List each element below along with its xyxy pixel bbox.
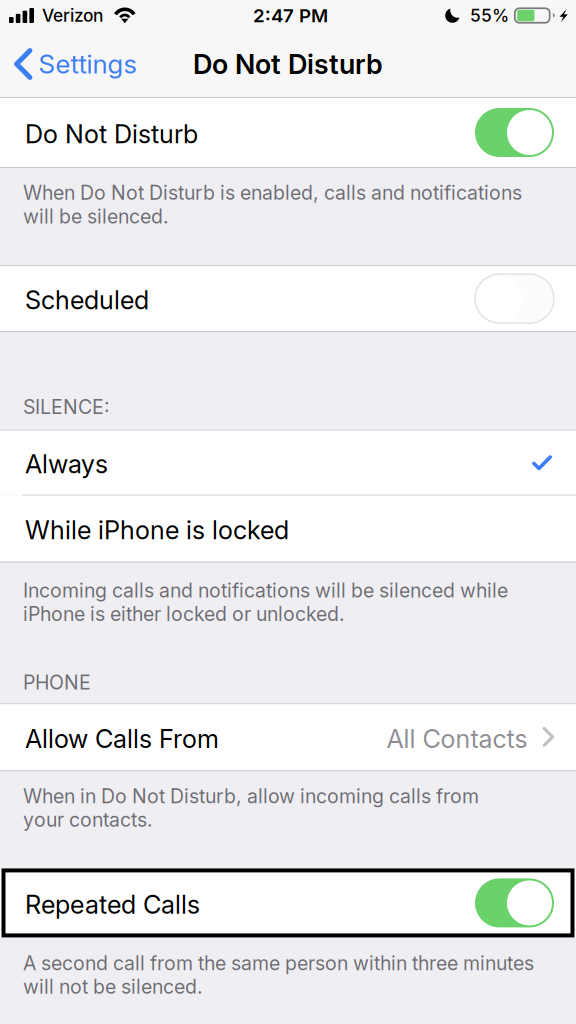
staticText: Allow Calls From bbox=[25, 723, 219, 754]
button[interactable]: Repeated Calls bbox=[0, 868, 576, 937]
button[interactable]: Allow Calls From bbox=[0, 704, 576, 770]
staticText: PHONE bbox=[23, 671, 91, 694]
staticText: Settings bbox=[38, 48, 136, 80]
staticText: 2:47 PM bbox=[253, 4, 328, 27]
staticText: Do Not Disturb bbox=[25, 119, 198, 149]
staticText: Scheduled bbox=[25, 285, 149, 315]
button[interactable]: Do Not Disturb bbox=[0, 98, 576, 167]
staticText: Incoming calls and notifications will be… bbox=[23, 579, 508, 626]
button[interactable]: Settings bbox=[0, 31, 148, 97]
staticText: SILENCE: bbox=[23, 395, 110, 419]
staticText: 55% bbox=[470, 5, 509, 26]
button[interactable]: Always bbox=[0, 431, 576, 495]
staticText: A second call from the same person withi… bbox=[23, 951, 534, 998]
staticText: When in Do Not Disturb, allow incoming c… bbox=[23, 784, 479, 831]
staticText: Do Not Disturb bbox=[193, 47, 383, 80]
staticText: Always bbox=[25, 449, 108, 479]
button[interactable]: Scheduled bbox=[0, 266, 576, 331]
staticText: While iPhone is locked bbox=[25, 515, 289, 545]
staticText: Repeated Calls bbox=[25, 889, 200, 920]
staticText: Verizon bbox=[42, 5, 103, 26]
staticText: When Do Not Disturb is enabled, calls an… bbox=[23, 181, 522, 228]
staticText: All Contacts bbox=[386, 723, 527, 754]
button[interactable]: While iPhone is locked bbox=[0, 496, 576, 562]
